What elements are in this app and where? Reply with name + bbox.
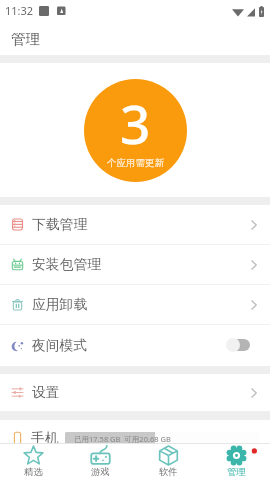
other: Open bbox=[251, 220, 257, 230]
staticText: 手机 bbox=[31, 430, 59, 447]
button[interactable]: 软件 bbox=[134, 444, 202, 480]
staticText: 游戏 bbox=[91, 466, 110, 478]
button[interactable]: 下载管理 bbox=[0, 205, 270, 244]
staticText: 管理 bbox=[227, 466, 246, 478]
staticText: 软件 bbox=[159, 466, 178, 478]
button[interactable]: 手机 bbox=[0, 420, 270, 443]
staticText: 安装包管理 bbox=[32, 256, 101, 273]
staticText: 3 bbox=[120, 87, 151, 159]
button[interactable]: 设置 bbox=[0, 374, 270, 411]
button[interactable]: 夜间模式开关 bbox=[226, 339, 250, 353]
staticText: 个应用需更新 bbox=[107, 157, 164, 169]
staticText: 已用17.58 GB 可用20.68 GB bbox=[74, 434, 171, 444]
button[interactable]: 应用卸载 bbox=[0, 285, 270, 324]
staticText: 管理 bbox=[11, 30, 40, 48]
button[interactable]: 精选 bbox=[0, 444, 67, 480]
staticText: 夜间模式 bbox=[32, 337, 88, 354]
button[interactable]: 3 个应用需更新 bbox=[84, 79, 187, 182]
other: Open bbox=[251, 388, 257, 398]
button[interactable]: 游戏 bbox=[67, 444, 134, 480]
button[interactable]: 夜间模式 bbox=[0, 325, 270, 366]
button[interactable]: 管理 bbox=[202, 444, 270, 480]
staticText: 下载管理 bbox=[32, 216, 88, 233]
staticText: 11:32 bbox=[5, 3, 34, 18]
staticText: 精选 bbox=[24, 466, 43, 478]
button[interactable]: 安装包管理 bbox=[0, 245, 270, 284]
other: Open bbox=[251, 300, 257, 310]
other: Open bbox=[251, 260, 257, 270]
staticText: 应用卸载 bbox=[32, 296, 88, 313]
staticText: 设置 bbox=[32, 384, 60, 401]
